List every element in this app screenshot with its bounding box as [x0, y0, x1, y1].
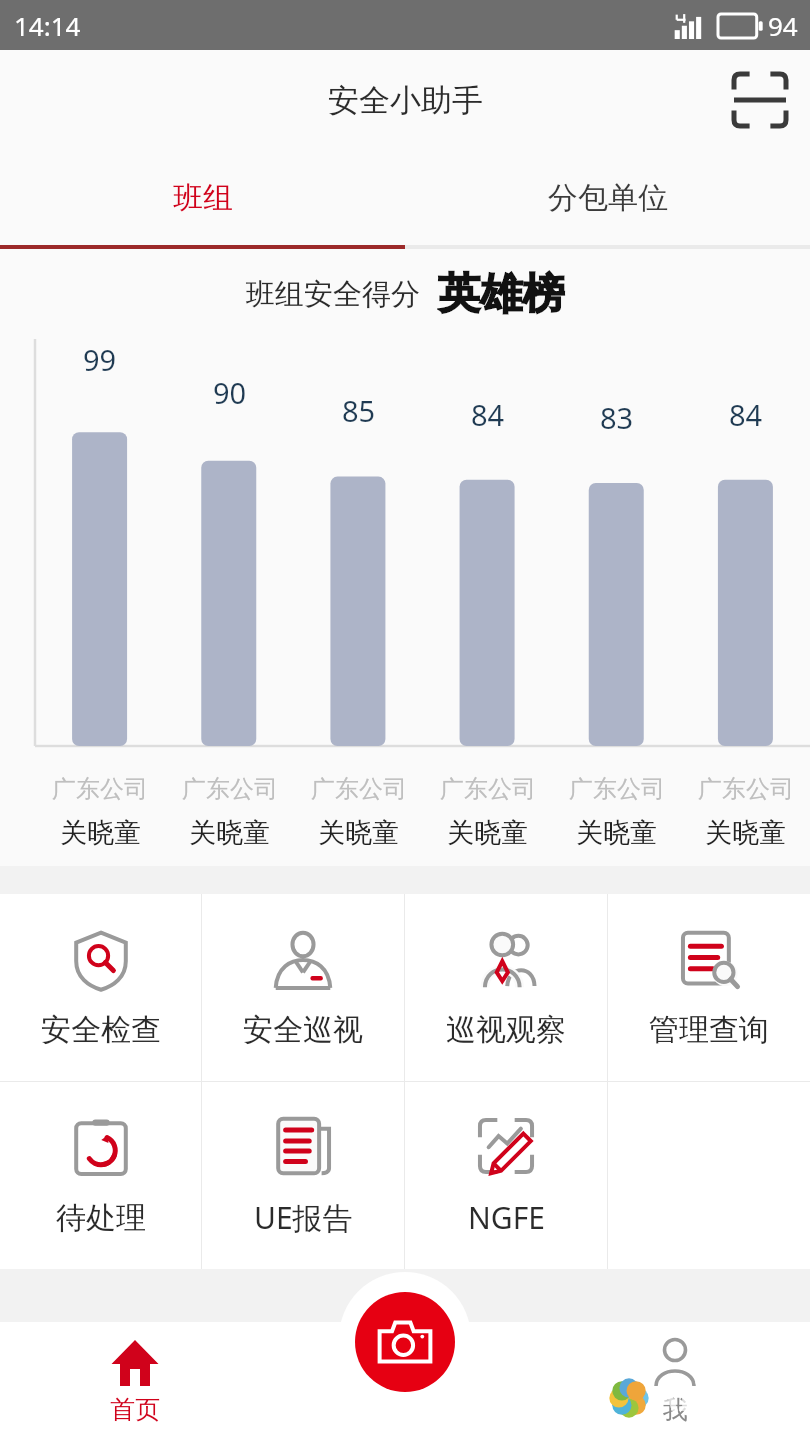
button[interactable]: 班组 [0, 150, 405, 245]
staticText: 安全巡视 [243, 1011, 363, 1049]
staticText: 关晓童 [189, 816, 270, 850]
staticText: 广东公司 [569, 774, 665, 804]
button[interactable]: 安全巡视 [202, 894, 404, 1081]
staticText: 广东公司 [182, 774, 278, 804]
staticText: 安全检查 [41, 1011, 161, 1049]
staticText: 关晓童 [447, 816, 528, 850]
button[interactable]: 巡视观察 [405, 894, 607, 1081]
staticText: 关晓童 [576, 816, 657, 850]
staticText: 85 [342, 391, 376, 430]
staticText: 广东公司 [698, 774, 794, 804]
button[interactable]: 首页 [0, 1322, 270, 1440]
button[interactable]: NGFE [405, 1082, 607, 1269]
staticText: 广东公司 [440, 774, 536, 804]
staticText: AI资讯网 [653, 1373, 800, 1422]
staticText: 84 [471, 395, 505, 434]
staticText: 巡视观察 [446, 1011, 566, 1049]
button[interactable]: Camera [355, 1292, 455, 1392]
staticText: 99 [83, 340, 117, 379]
staticText: 94 [768, 8, 798, 43]
button[interactable]: 分包单位 [405, 150, 810, 245]
staticText: 关晓童 [705, 816, 786, 850]
staticText: 英雄榜 [438, 268, 564, 321]
staticText: 84 [729, 395, 763, 434]
button[interactable]: UE报告 [202, 1082, 404, 1269]
staticText: 14:14 [14, 8, 81, 43]
staticText: 我 [663, 1394, 688, 1425]
button[interactable]: 安全检查 [0, 894, 201, 1081]
staticText: 待处理 [56, 1199, 146, 1237]
staticText: 关晓童 [318, 816, 399, 850]
staticText: 广东公司 [311, 774, 407, 804]
staticText: 90 [213, 373, 247, 412]
staticText: 班组 [173, 179, 233, 217]
button[interactable]: Scan [724, 64, 796, 136]
staticText: NGFE [468, 1197, 545, 1238]
staticText: UE报告 [254, 1197, 353, 1238]
staticText: 83 [600, 398, 634, 437]
staticText: 班组安全得分 [246, 276, 420, 313]
staticText: 分包单位 [548, 179, 668, 217]
staticText: 关晓童 [60, 816, 141, 850]
staticText: 安全小助手 [328, 81, 483, 120]
staticText: 管理查询 [649, 1011, 769, 1049]
staticText: 广东公司 [52, 774, 148, 804]
button[interactable]: 待处理 [0, 1082, 201, 1269]
button[interactable]: 管理查询 [608, 894, 810, 1081]
button[interactable]: 我 [540, 1322, 810, 1440]
staticText: 首页 [110, 1394, 160, 1425]
